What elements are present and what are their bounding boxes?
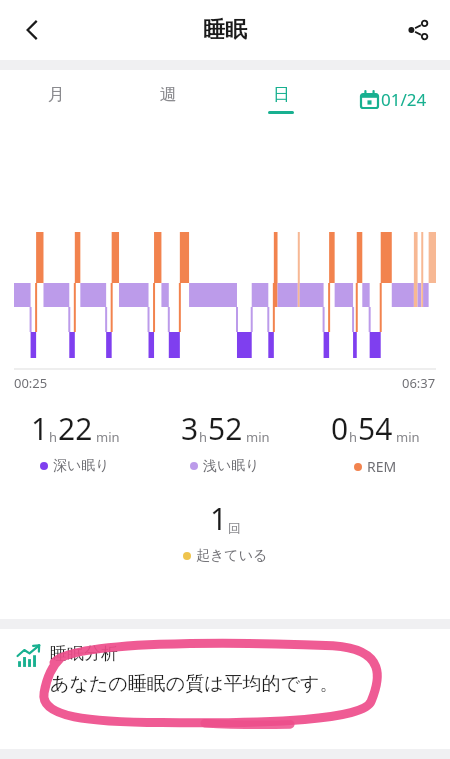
staticText: 00:25 — [14, 374, 48, 392]
staticText: 06:37 — [402, 374, 436, 392]
staticText: h — [49, 428, 58, 446]
staticText: min — [96, 428, 120, 446]
staticText: 1 — [210, 498, 228, 539]
staticText: 月 — [48, 84, 65, 105]
staticText: 52 — [208, 408, 243, 449]
button[interactable]: 睡眠分析 — [0, 629, 450, 749]
staticText: 01/24 — [381, 88, 427, 111]
staticText: 0 — [331, 408, 349, 449]
staticText: 起きている — [196, 547, 268, 565]
staticText: 回 — [228, 520, 241, 536]
staticText: 浅い眠り — [203, 457, 260, 475]
staticText: 睡眠 — [203, 16, 247, 44]
staticText: 1 — [31, 408, 49, 449]
staticText: 22 — [58, 408, 93, 449]
button[interactable]: 0 — [300, 408, 450, 476]
staticText: REM — [367, 457, 397, 476]
button[interactable]: Share — [394, 6, 442, 54]
staticText: 深い眠り — [53, 457, 110, 475]
button[interactable]: 日 — [224, 70, 337, 128]
button[interactable]: 3 — [150, 408, 300, 475]
staticText: min — [396, 428, 420, 446]
staticText: h — [199, 428, 208, 446]
staticText: min — [246, 428, 270, 446]
button[interactable]: 週 — [112, 70, 224, 128]
staticText: 3 — [181, 408, 199, 449]
button[interactable]: 01/24 — [337, 70, 450, 128]
button[interactable]: Back — [8, 6, 56, 54]
staticText: あなたの睡眠の質は平均的です。 — [50, 672, 339, 696]
button[interactable]: 1 — [0, 498, 450, 565]
staticText: 日 — [273, 84, 290, 105]
button[interactable]: 1 — [0, 408, 150, 475]
staticText: h — [349, 428, 358, 446]
staticText: 睡眠分析 — [50, 643, 118, 664]
staticText: 54 — [358, 408, 393, 449]
button[interactable]: 月 — [0, 70, 112, 128]
staticText: 週 — [160, 84, 177, 105]
